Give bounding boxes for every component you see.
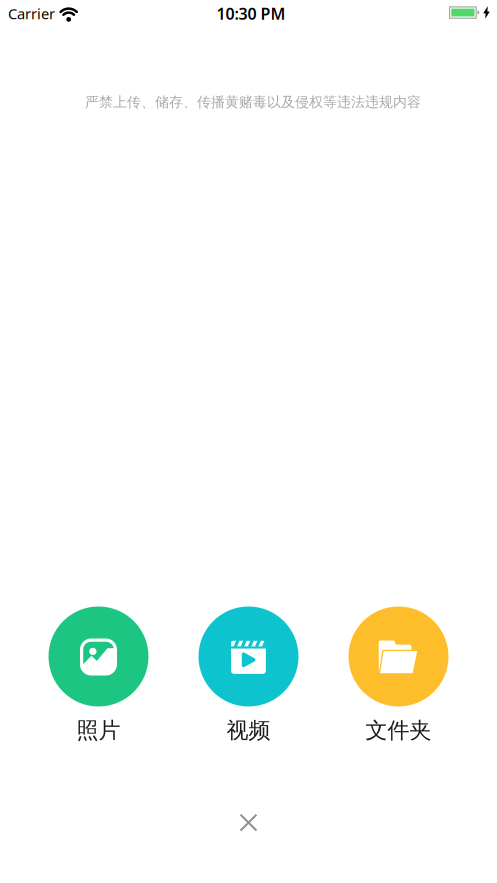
button[interactable]: Close xyxy=(229,803,268,842)
button[interactable]: 照片 xyxy=(48,606,148,744)
staticText: 严禁上传、储存、传播黄赌毒以及侵权等违法违规内容 xyxy=(85,91,421,112)
staticText: 照片 xyxy=(76,714,120,747)
button[interactable]: 视频 xyxy=(198,606,298,744)
staticText: 10:30 PM xyxy=(216,3,285,24)
staticText: 文件夹 xyxy=(365,714,431,747)
staticText: Carrier xyxy=(8,4,55,23)
staticText: 视频 xyxy=(226,714,270,747)
button[interactable]: 文件夹 xyxy=(348,606,448,744)
